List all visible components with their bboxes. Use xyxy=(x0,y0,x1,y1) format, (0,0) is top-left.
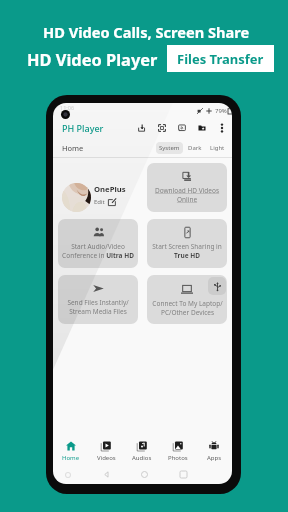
staticText: Download HD Videos Online xyxy=(151,186,223,204)
button[interactable]: Start Audio/Video Conference in Ultra HD xyxy=(58,219,138,268)
staticText: PH Player xyxy=(62,122,104,134)
button[interactable]: Cast xyxy=(178,124,186,132)
button[interactable]: Dark xyxy=(185,142,205,154)
button[interactable]: Start Screen Sharing in True HD xyxy=(147,219,227,268)
staticText: Connect To My Laptop/ PC/Other Devices xyxy=(152,299,223,317)
staticText: 79% xyxy=(215,107,227,115)
button[interactable]: System xyxy=(156,142,183,154)
staticText: HD Video Calls, Screen Share xyxy=(43,22,250,42)
staticText: Start Audio/Video Conference in Ultra HD xyxy=(62,242,134,260)
button[interactable]: Light xyxy=(207,142,228,154)
button[interactable]: Send Files Instantly/ Stream Media Files xyxy=(58,275,138,324)
staticText: System xyxy=(159,144,180,152)
button[interactable]: OnePlus xyxy=(58,163,138,212)
staticText: Home xyxy=(62,454,80,462)
button[interactable]: More options xyxy=(218,123,226,133)
staticText: Edit xyxy=(94,198,105,206)
staticText: Start Screen Sharing in True HD xyxy=(152,242,222,260)
staticText: Dark xyxy=(188,144,202,152)
staticText: Files Transfer xyxy=(177,50,264,68)
button[interactable]: USB connection xyxy=(147,275,227,324)
button[interactable]: USB connection xyxy=(208,277,226,295)
button[interactable]: Download HD Videos Online xyxy=(147,163,227,212)
staticText: Light xyxy=(210,144,225,152)
button[interactable]: Download xyxy=(138,124,146,132)
button[interactable]: Photos xyxy=(160,438,196,465)
button[interactable]: Favourite folder xyxy=(198,124,206,132)
staticText: Videos xyxy=(97,454,116,462)
staticText: 11:06 xyxy=(60,104,75,111)
button[interactable]: Apps xyxy=(196,438,232,465)
staticText: Audios xyxy=(132,454,152,462)
button[interactable]: Audios xyxy=(124,438,160,465)
staticText: OnePlus xyxy=(94,184,126,194)
staticText: Photos xyxy=(168,454,188,462)
button[interactable]: Home xyxy=(53,438,88,465)
staticText: Apps xyxy=(207,454,222,462)
staticText: Send Files Instantly/ Stream Media Files xyxy=(67,298,129,316)
staticText: HD Video Player xyxy=(27,48,158,70)
button[interactable]: Videos xyxy=(88,438,124,465)
button[interactable]: Crop xyxy=(158,124,166,132)
staticText: Home xyxy=(62,143,84,153)
